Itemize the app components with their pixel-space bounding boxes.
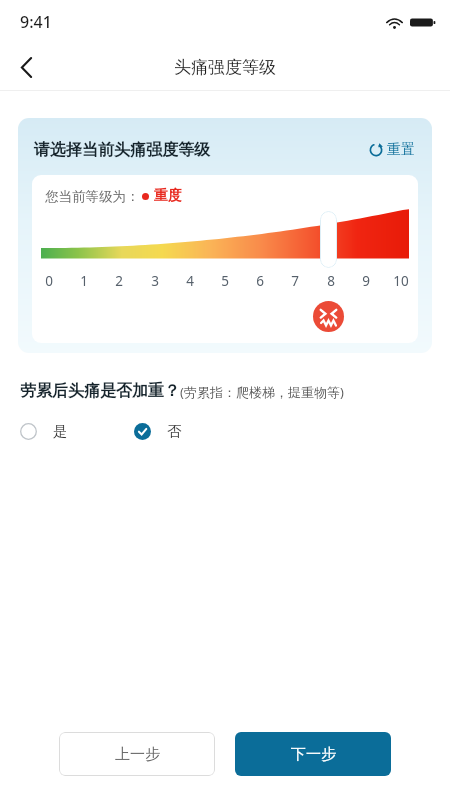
staticText: 7 <box>284 272 306 290</box>
button[interactable]: 否 <box>134 422 182 440</box>
staticText: 10 <box>390 272 412 290</box>
staticText: 0 <box>38 272 60 290</box>
staticText: 劳累后头痛是否加重？ <box>20 381 180 401</box>
staticText: 8 <box>320 272 342 290</box>
button[interactable]: 上一步 <box>59 732 215 776</box>
staticText: 重置 <box>387 141 415 159</box>
staticText: 是 <box>53 422 68 440</box>
staticText: 6 <box>249 272 271 290</box>
staticText: 9 <box>355 272 377 290</box>
staticText: (劳累指：爬楼梯，提重物等) <box>180 383 344 401</box>
staticText: 头痛强度等级 <box>174 57 276 78</box>
staticText: 上一步 <box>115 745 160 764</box>
staticText: 否 <box>167 422 182 440</box>
staticText: 下一步 <box>291 745 336 764</box>
button[interactable]: 重置 <box>366 138 418 162</box>
staticText: 3 <box>144 272 166 290</box>
staticText: 您当前等级为： <box>45 188 140 205</box>
button[interactable]: 下一步 <box>235 732 391 776</box>
staticText: 请选择当前头痛强度等级 <box>34 140 210 160</box>
staticText: 重度 <box>154 187 182 205</box>
staticText: 1 <box>73 272 95 290</box>
staticText: 2 <box>108 272 130 290</box>
staticText: 4 <box>179 272 201 290</box>
button[interactable]: Intensity 8 <box>320 211 337 268</box>
button[interactable]: Back <box>6 47 46 87</box>
staticText: 5 <box>214 272 236 290</box>
staticText: 9:41 <box>20 11 52 33</box>
button[interactable]: 是 <box>20 422 72 440</box>
